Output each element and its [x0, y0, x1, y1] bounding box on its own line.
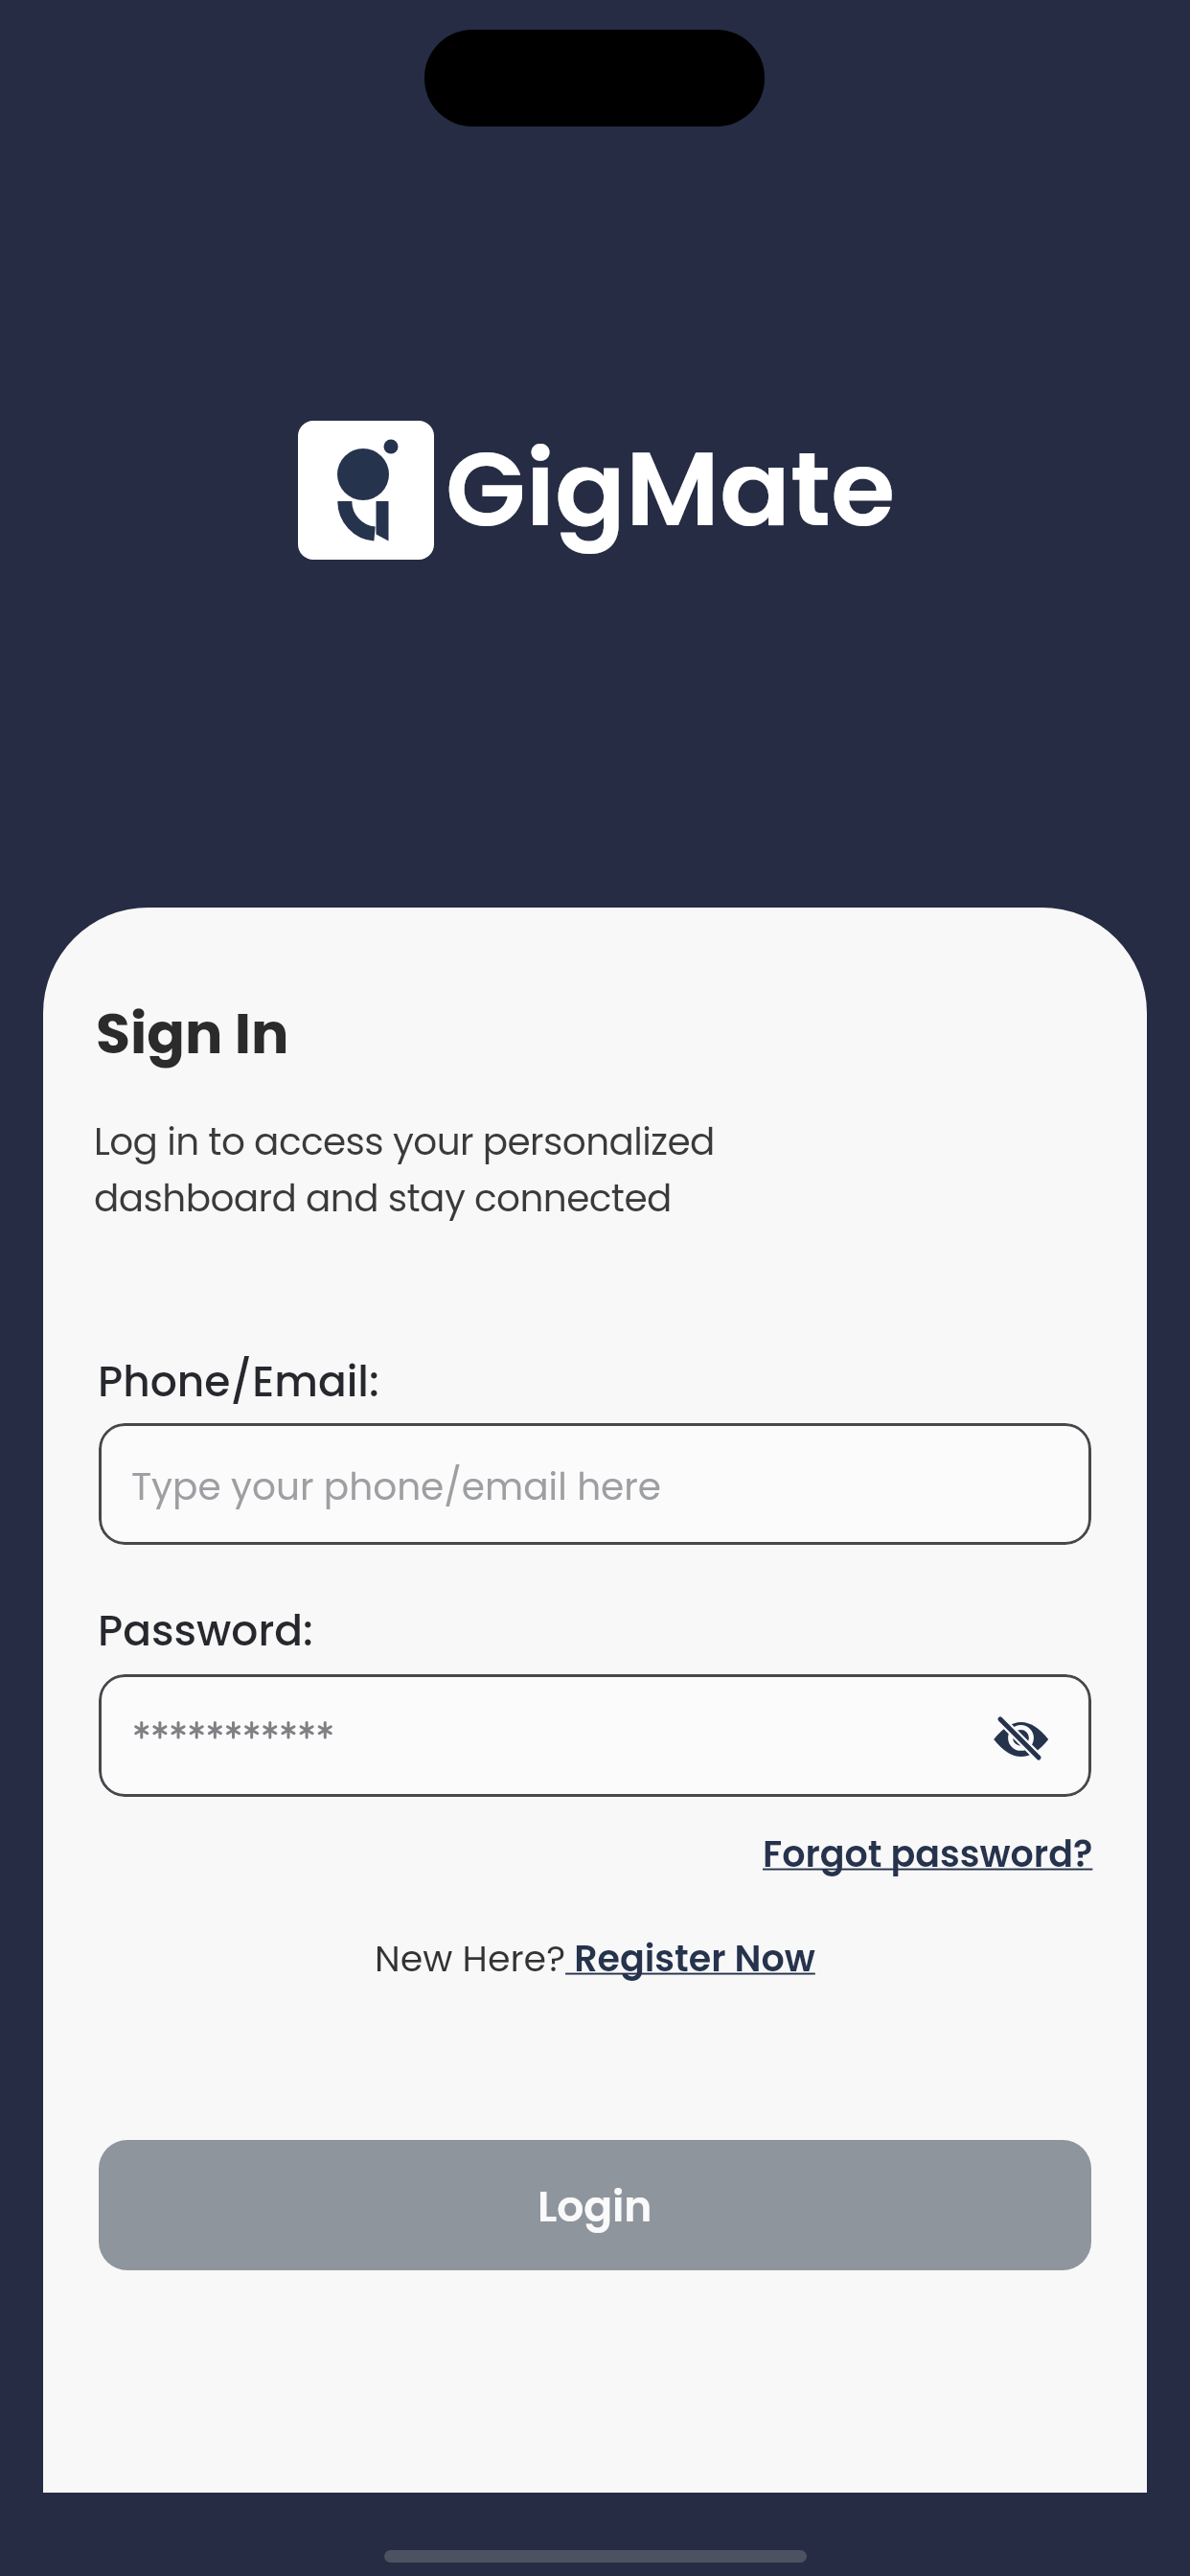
button[interactable]: New Here? Register Now	[375, 1933, 815, 1984]
staticText: Password:	[98, 1601, 313, 1661]
button[interactable]: Forgot password?	[763, 1828, 1093, 1879]
button[interactable]	[99, 1674, 1091, 1797]
staticText: Forgot password?	[763, 1828, 1093, 1879]
button[interactable]	[977, 1706, 1073, 1773]
staticText: Phone/Email:	[98, 1352, 379, 1412]
button[interactable]: Login	[99, 2140, 1091, 2270]
staticText: Log in to access your personalized dashb…	[94, 1115, 715, 1225]
staticText: Type your phone/email here	[131, 1460, 662, 1513]
staticText: Sign In	[96, 995, 289, 1073]
staticText: Login	[538, 2177, 652, 2237]
button[interactable]: Type your phone/email here	[99, 1423, 1091, 1545]
staticText: New Here? Register Now	[375, 1933, 815, 1984]
staticText: GigMate	[446, 416, 896, 563]
